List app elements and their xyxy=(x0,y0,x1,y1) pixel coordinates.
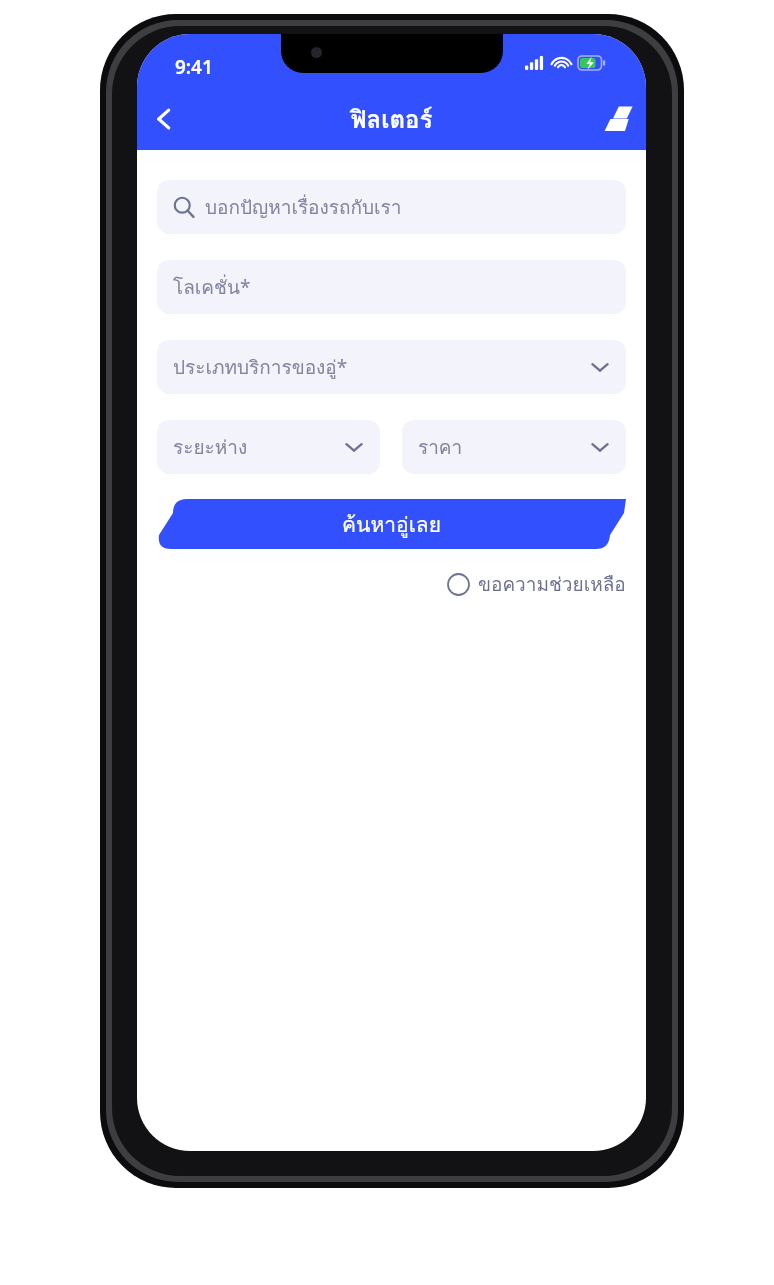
staticText: ฟิลเตอร์ xyxy=(191,100,592,138)
button[interactable]: โลเคชั่น* xyxy=(157,260,626,314)
button[interactable]: บอกปัญหาเรื่องรถกับเรา xyxy=(157,180,626,234)
staticText: ประเภทบริการของอู่* xyxy=(173,352,590,382)
staticText: 9:41 xyxy=(175,54,213,80)
staticText: ขอความช่วยเหลือ xyxy=(478,569,626,599)
button[interactable]: ค้นหาอู่เลย xyxy=(157,499,626,549)
button[interactable]: ระยะห่าง xyxy=(157,420,380,474)
button[interactable]: ราคา xyxy=(402,420,626,474)
button[interactable]: ขอความช่วยเหลือ xyxy=(157,569,626,599)
staticText: บอกปัญหาเรื่องรถกับเรา xyxy=(205,192,402,222)
staticText: ราคา xyxy=(418,432,590,462)
button[interactable]: App logo xyxy=(592,92,646,146)
staticText: ระยะห่าง xyxy=(173,432,344,462)
button[interactable]: Back xyxy=(137,92,191,146)
staticText: ค้นหาอู่เลย xyxy=(342,508,442,541)
staticText: โลเคชั่น* xyxy=(173,272,251,302)
button[interactable]: ประเภทบริการของอู่* xyxy=(157,340,626,394)
